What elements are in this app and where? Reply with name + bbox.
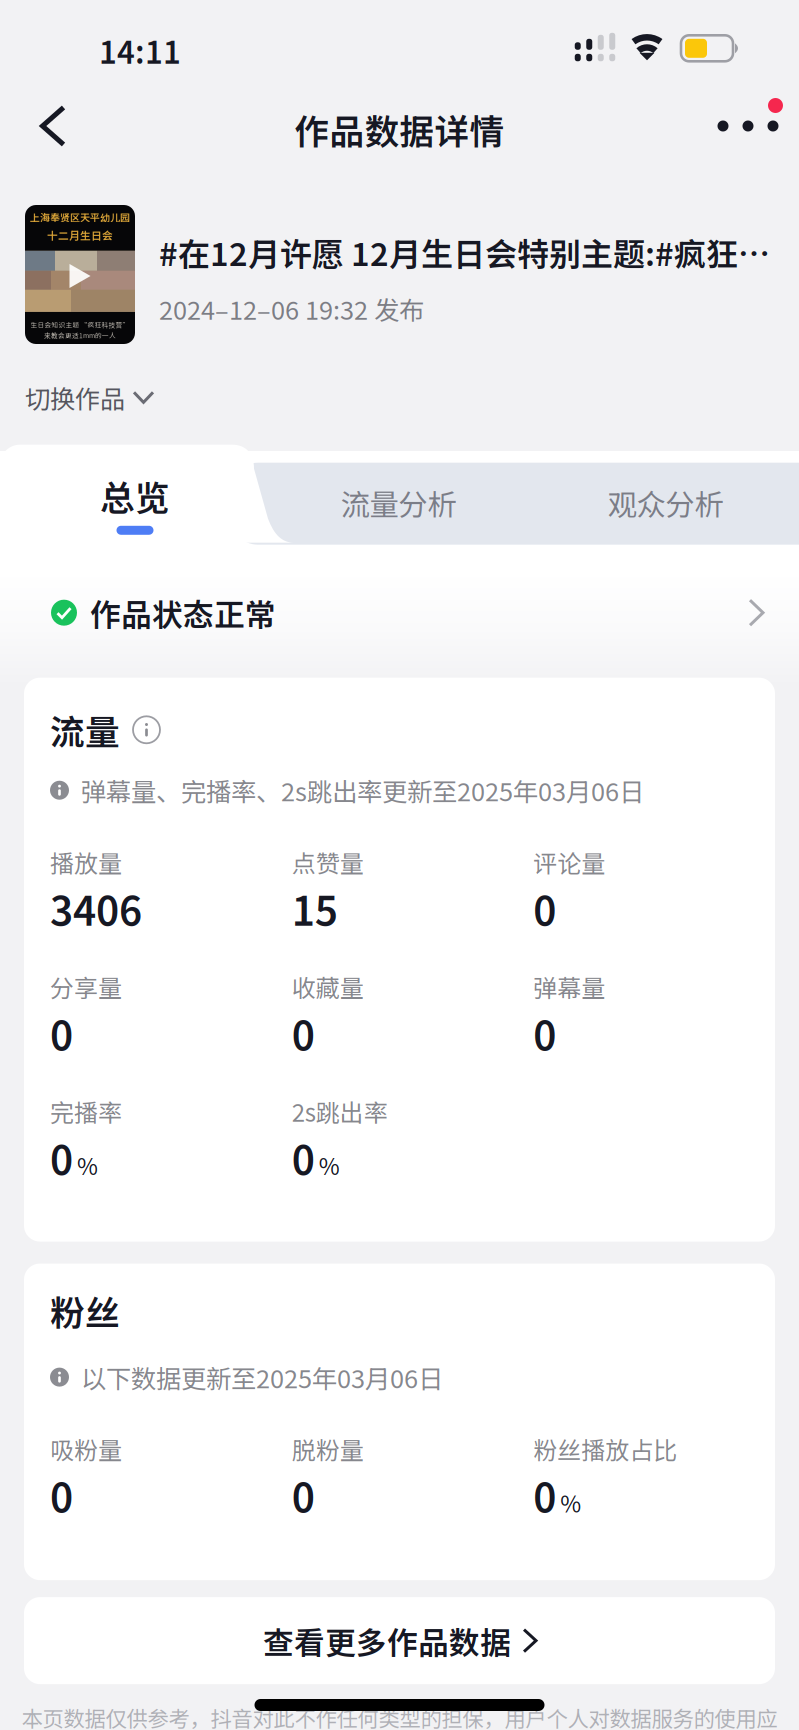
staticText: 0 [50, 1466, 73, 1524]
staticText: % [560, 1486, 581, 1519]
staticText: 作品数据详情 [294, 104, 504, 155]
button[interactable]: 流量分析 [265, 463, 532, 543]
staticText: 0 [292, 1466, 315, 1524]
staticText: 总览 [100, 471, 170, 521]
staticText: 十二月生日会 [47, 227, 113, 243]
staticText: 2s跳出率 [292, 1094, 388, 1129]
staticText: 0 [533, 1466, 556, 1524]
staticText: 本页数据仅供参考，抖音对此不作任何类型的担保，用户个人对数据服务的使用应 [21, 1702, 777, 1730]
button[interactable]: 总览 [0, 445, 270, 539]
staticText: 以下数据更新至2025年03月06日 [81, 1359, 443, 1395]
staticText: 脱粉量 [292, 1431, 364, 1466]
staticText: #在12月许愿 12月生日会特别主题:#疯狂发… [159, 229, 789, 275]
staticText: 粉丝播放占比 [533, 1431, 677, 1466]
button[interactable]: 观众分析 [532, 463, 799, 543]
staticText: 弹幕量、完播率、2s跳出率更新至2025年03月06日 [81, 772, 644, 809]
staticText: 0 [533, 879, 556, 937]
staticText: % [319, 1149, 340, 1182]
staticText: 流量分析 [340, 481, 456, 524]
button[interactable]: 作品状态正常 [0, 569, 799, 657]
staticText: 查看更多作品数据 [263, 1618, 511, 1663]
button[interactable]: 返回 [14, 84, 92, 168]
staticText: 切换作品 [25, 379, 125, 416]
staticText: 0 [533, 1004, 556, 1062]
staticText: 弹幕量 [533, 969, 605, 1004]
staticText: 2024–12–06 19:32 发布 [159, 290, 424, 327]
staticText: 流量 [50, 705, 120, 755]
staticText: 15 [292, 879, 338, 937]
staticText: 0 [50, 1004, 73, 1062]
button[interactable]: 切换作品 [25, 379, 153, 416]
staticText: 0 [292, 1129, 315, 1187]
staticText: 0 [292, 1004, 315, 1062]
staticText: 吸粉量 [50, 1431, 122, 1466]
staticText: 分享量 [50, 969, 122, 1004]
staticText: 上海奉贤区天平幼儿园 [30, 210, 130, 224]
button[interactable]: 查看更多作品数据 [24, 1597, 775, 1684]
staticText: % [77, 1149, 98, 1182]
staticText: 粉丝 [50, 1286, 120, 1336]
staticText: 来教会更适1mm的一人 [44, 330, 116, 340]
staticText: 播放量 [50, 845, 122, 879]
staticText: 作品状态正常 [90, 590, 276, 635]
staticText: 3406 [50, 879, 142, 937]
staticText: 观众分析 [607, 481, 723, 524]
staticText: 14:11 [99, 28, 181, 73]
staticText: 0 [50, 1129, 73, 1187]
staticText: 完播率 [50, 1094, 122, 1129]
button[interactable]: 更多 [709, 84, 787, 168]
staticText: 评论量 [533, 845, 605, 879]
staticText: 生日会知识主题 “疯狂科技营” [30, 320, 129, 329]
staticText: 收藏量 [292, 969, 364, 1004]
staticText: 点赞量 [292, 845, 364, 879]
button[interactable]: 上海奉贤区天平幼儿园 [0, 205, 799, 345]
